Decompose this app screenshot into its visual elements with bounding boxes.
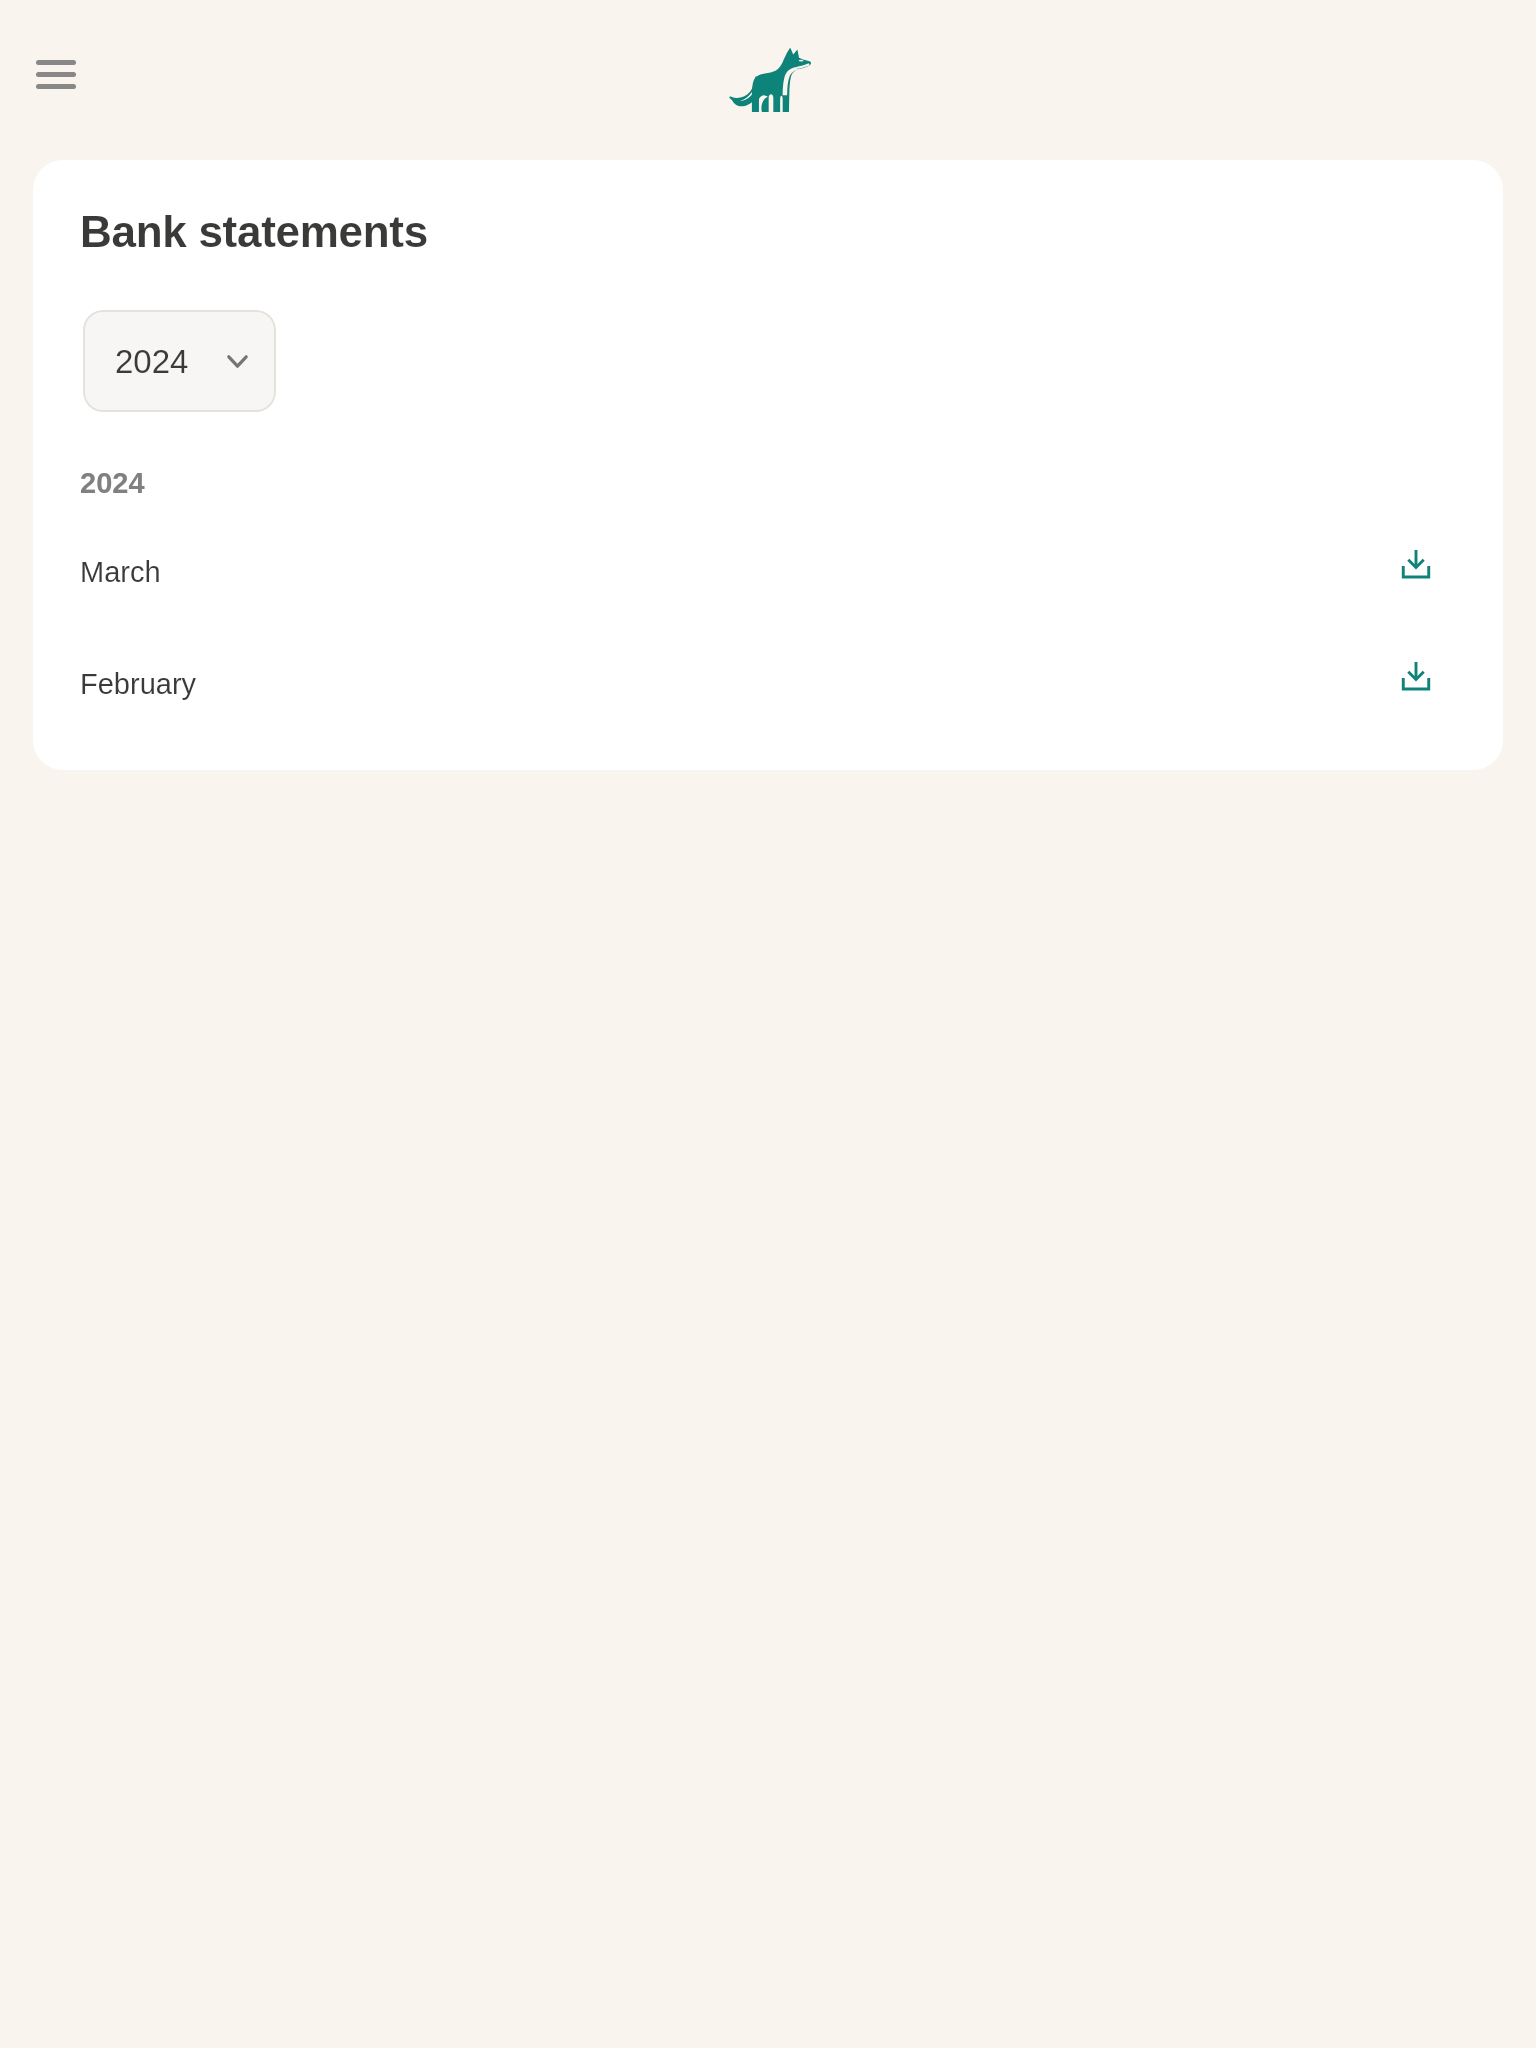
button[interactable]: March (33, 556, 1503, 668)
staticText: February (80, 668, 197, 700)
staticText: March (80, 556, 161, 588)
staticText: 2024 (80, 467, 145, 499)
button[interactable]: 2024 (83, 310, 276, 412)
button[interactable]: Download March statement (1394, 542, 1438, 586)
button[interactable]: Open navigation menu (16, 40, 96, 108)
staticText: Bank statements (80, 207, 428, 256)
staticText: 2024 (115, 343, 189, 380)
button[interactable]: Download February statement (1394, 654, 1438, 698)
button[interactable]: February (33, 668, 1503, 770)
